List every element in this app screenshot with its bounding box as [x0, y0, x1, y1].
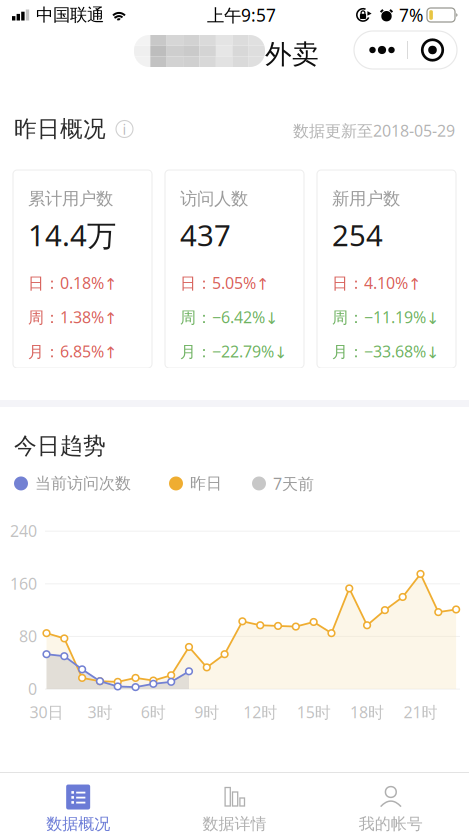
staticText: 80 — [19, 625, 37, 647]
staticText: 月：−22.79%↓ — [180, 341, 287, 362]
button[interactable]: 新用户数 — [317, 170, 456, 368]
staticText: 昨日 — [190, 474, 222, 493]
staticText: 6时 — [141, 701, 166, 723]
staticText: 数据更新至2018-05-29 — [293, 120, 455, 141]
staticText: 0 — [28, 678, 37, 699]
staticText: 437 — [180, 215, 231, 254]
staticText: 日：5.05%↑ — [180, 272, 269, 293]
staticText: 数据详情 — [202, 814, 266, 834]
staticText: 7% — [399, 3, 423, 26]
button[interactable]: Info — [106, 120, 137, 137]
staticText: 昨日概况 — [14, 115, 106, 143]
staticText: 21时 — [403, 701, 437, 723]
staticText: 外卖 — [265, 38, 319, 71]
staticText: 15时 — [297, 701, 331, 723]
staticText: 新用户数 — [332, 188, 400, 209]
staticText: 254 — [332, 215, 383, 254]
staticText: 上午9:57 — [207, 3, 276, 26]
staticText: 周：1.38%↑ — [28, 306, 117, 328]
staticText: 160 — [10, 573, 37, 594]
staticText: 12时 — [243, 701, 277, 723]
staticText: 我的帐号 — [359, 814, 423, 834]
staticText: 今日趋势 — [14, 432, 106, 460]
button[interactable]: 数据概况 — [0, 773, 156, 834]
staticText: 日：0.18%↑ — [28, 272, 117, 293]
staticText: 当前访问次数 — [35, 474, 131, 493]
staticText: 累计用户数 — [28, 188, 113, 209]
staticText: 9时 — [194, 701, 219, 723]
staticText: 7天前 — [273, 473, 314, 494]
staticText: 周：−6.42%↓ — [180, 306, 278, 328]
staticText: 18时 — [350, 701, 384, 723]
staticText: 中国联通 — [36, 4, 104, 26]
staticText: 14.4万 — [28, 215, 116, 254]
staticText: 月：6.85%↑ — [28, 341, 117, 362]
staticText: 240 — [10, 520, 37, 541]
button[interactable]: 数据详情 — [156, 773, 313, 834]
button[interactable]: Close — [408, 31, 457, 69]
staticText: 访问人数 — [180, 188, 248, 209]
staticText: 数据概况 — [46, 814, 110, 834]
staticText: i — [122, 119, 126, 139]
staticText: 月：−33.68%↓ — [332, 341, 439, 362]
staticText: 周：−11.19%↓ — [332, 306, 439, 328]
button[interactable]: 访问人数 — [165, 170, 304, 368]
staticText: 30日 — [29, 701, 63, 723]
staticText: 3时 — [87, 701, 112, 723]
button[interactable]: More — [354, 31, 407, 69]
staticText: 日：4.10%↑ — [332, 272, 421, 293]
button[interactable]: 累计用户数 — [13, 170, 152, 368]
button[interactable]: 我的帐号 — [313, 773, 469, 834]
